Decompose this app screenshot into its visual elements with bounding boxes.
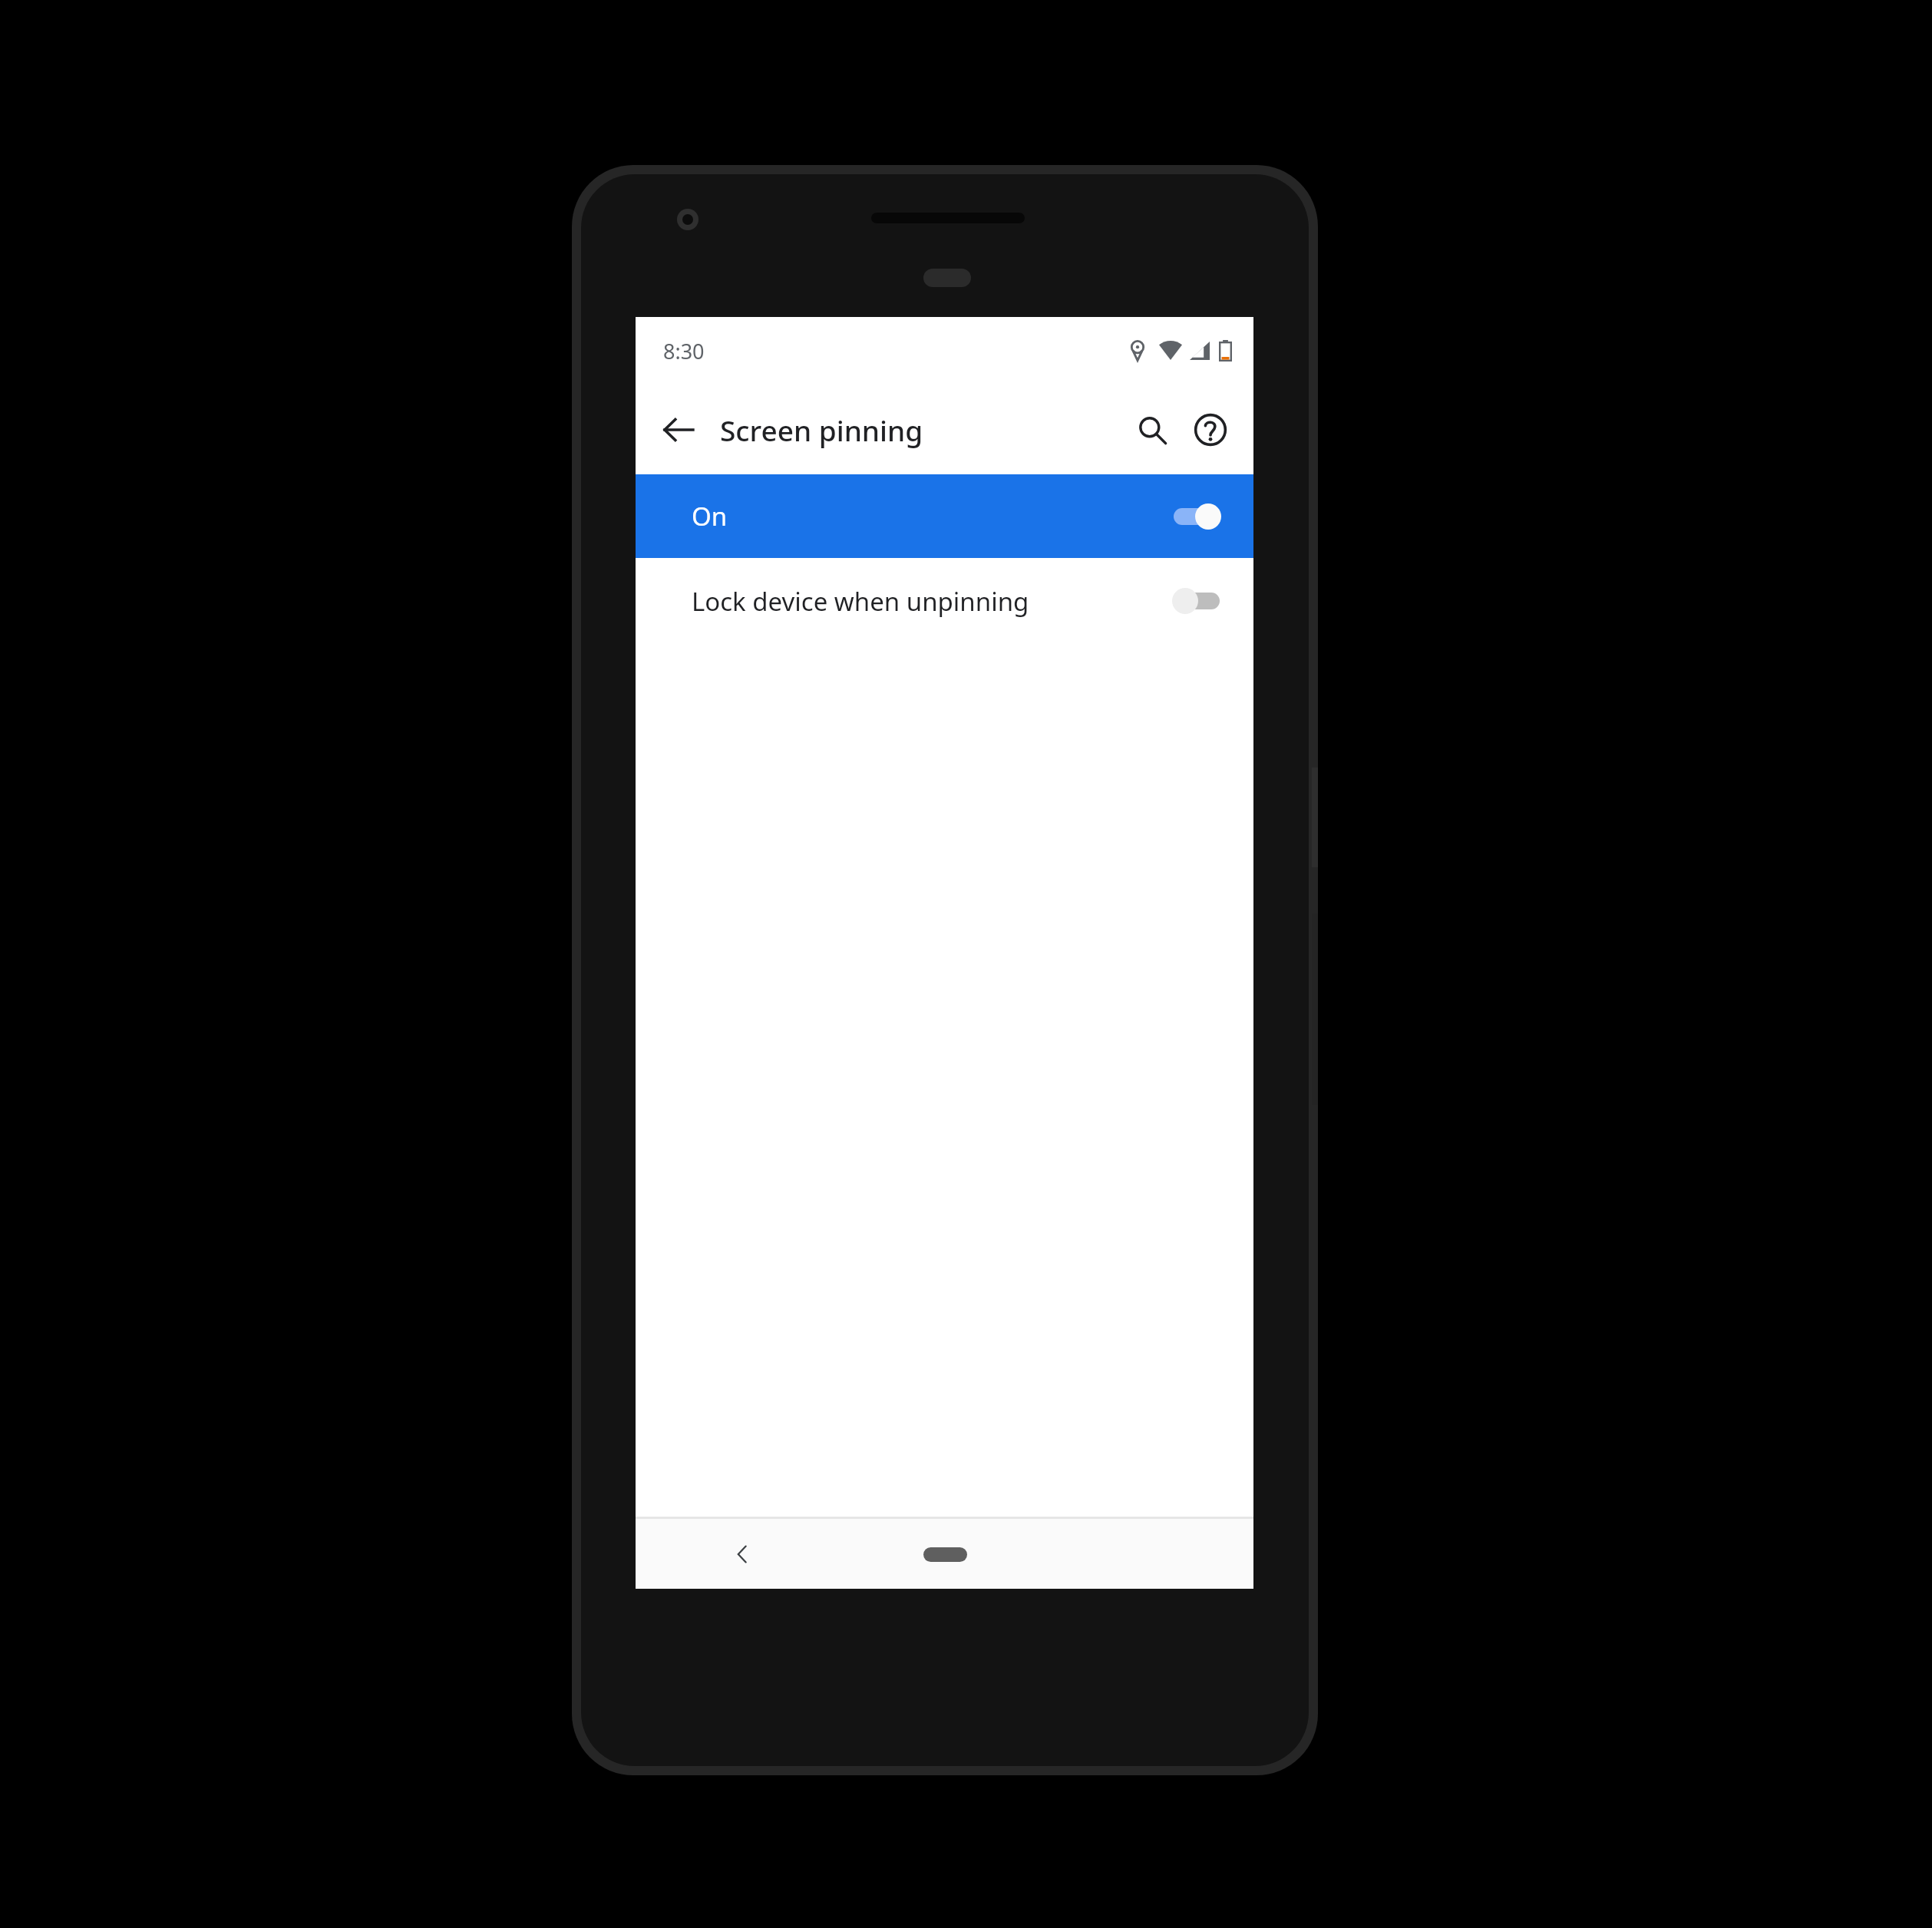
staticText: Lock device when unpinning bbox=[692, 584, 1029, 619]
button[interactable]: Help bbox=[1181, 401, 1240, 459]
button[interactable]: Back bbox=[649, 401, 708, 459]
button[interactable]: Back bbox=[715, 1527, 769, 1581]
button[interactable]: Home bbox=[903, 1531, 987, 1577]
staticText: 8:30 bbox=[663, 337, 705, 365]
button[interactable]: Search bbox=[1123, 401, 1181, 459]
staticText: Screen pinning bbox=[720, 411, 923, 449]
button[interactable]: Lock device when unpinning bbox=[636, 558, 1253, 644]
button[interactable]: On bbox=[636, 474, 1253, 558]
staticText: On bbox=[692, 499, 728, 533]
